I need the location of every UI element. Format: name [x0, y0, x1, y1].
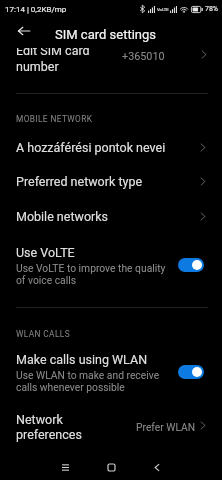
button[interactable]: Preferred network type: [0, 164, 222, 198]
button[interactable]: A hozzáférési pontok nevei: [0, 130, 222, 164]
staticText: +365010: [122, 50, 165, 63]
button[interactable]: Home: [88, 454, 134, 480]
staticText: Edit SIM card number: [16, 47, 90, 74]
staticText: Prefer WLAN: [136, 421, 196, 433]
staticText: WLAN CALLS: [16, 329, 70, 339]
button[interactable]: Network preferences: [0, 405, 222, 449]
button[interactable]: Navigate up: [13, 20, 35, 42]
button[interactable]: Toggle: [178, 257, 204, 273]
button[interactable]: Edit SIM card number: [0, 47, 222, 82]
staticText: SIM card settings: [55, 27, 157, 42]
staticText: 78%: [205, 5, 218, 13]
staticText: Use WLAN to make and receive calls whene…: [16, 369, 160, 393]
staticText: Make calls using WLAN: [16, 352, 148, 367]
button[interactable]: Mobile networks: [0, 199, 222, 233]
staticText: MOBILE NETWORK: [16, 114, 93, 124]
staticText: VoLTE: [157, 7, 169, 12]
staticText: Use VoLTE: [16, 245, 75, 260]
staticText: Use VoLTE to improve the quality of voic…: [16, 262, 166, 286]
button[interactable]: Back: [134, 454, 180, 480]
staticText: Network preferences: [16, 412, 82, 442]
staticText: Mobile networks: [16, 209, 109, 224]
button[interactable]: Toggle: [178, 364, 204, 380]
staticText: A hozzáférési pontok nevei: [16, 140, 166, 155]
button[interactable]: Make calls using WLAN: [0, 345, 222, 399]
staticText: 17:14 | 0,2KB/mp: [5, 5, 67, 14]
button[interactable]: Recent apps: [42, 454, 88, 480]
staticText: Preferred network type: [16, 174, 143, 189]
button[interactable]: Use VoLTE: [0, 238, 222, 292]
